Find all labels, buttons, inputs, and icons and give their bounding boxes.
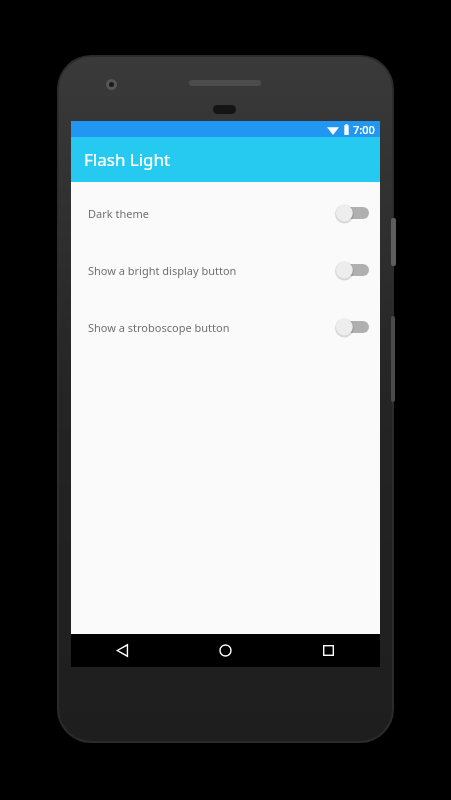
button[interactable]: Toggle [335, 317, 369, 337]
button[interactable]: Show a stroboscope button [71, 311, 380, 343]
button[interactable]: Home [174, 634, 277, 667]
staticText: Show a stroboscope button [88, 320, 335, 335]
button[interactable]: Dark theme [71, 197, 380, 229]
staticText: Dark theme [88, 206, 335, 221]
button[interactable]: Recent apps [277, 634, 380, 667]
staticText: 7:00 [353, 122, 375, 137]
staticText: Show a bright display button [88, 263, 335, 278]
button[interactable]: Back [71, 634, 174, 667]
button[interactable]: Toggle [335, 203, 369, 223]
button[interactable]: Toggle [335, 260, 369, 280]
button[interactable]: Show a bright display button [71, 254, 380, 286]
staticText: Flash Light [84, 148, 171, 171]
